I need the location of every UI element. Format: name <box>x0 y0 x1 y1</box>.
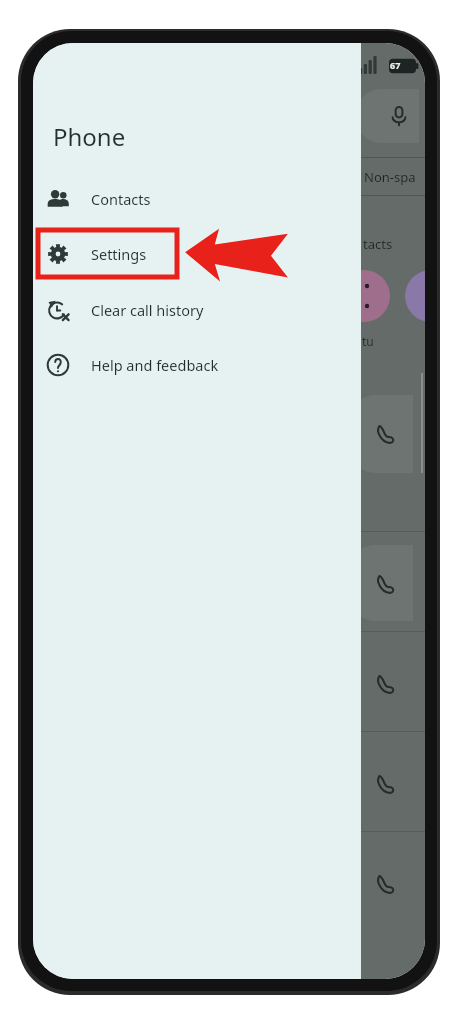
staticText: Help and feedback <box>91 355 219 375</box>
button[interactable]: Call <box>361 417 413 451</box>
button[interactable]: Help and feedback <box>33 341 333 388</box>
staticText: Clear call history <box>91 300 204 320</box>
button[interactable]: Call <box>361 667 413 701</box>
button[interactable]: Voice search <box>355 89 419 143</box>
staticText: Settings <box>91 244 147 264</box>
staticText: Non-spa <box>364 168 416 186</box>
button[interactable]: Call <box>361 567 413 601</box>
staticText: Contacts <box>91 189 151 209</box>
staticText: tu <box>362 333 374 349</box>
staticText: Phone <box>53 120 126 153</box>
button[interactable]: Call <box>361 767 413 801</box>
staticText: tacts <box>363 235 393 253</box>
staticText: 67 <box>390 59 401 71</box>
button[interactable]: Call <box>361 867 413 901</box>
button[interactable]: Clear call history <box>33 286 333 333</box>
button[interactable]: Contacts <box>33 175 333 222</box>
button[interactable]: Settings <box>33 230 333 277</box>
